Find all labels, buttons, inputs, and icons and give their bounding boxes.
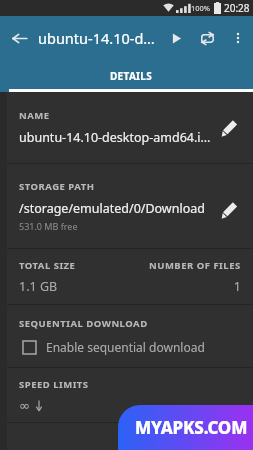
button[interactable]: NAME bbox=[7, 92, 253, 163]
staticText: DETAILS bbox=[110, 69, 152, 83]
staticText: 1 bbox=[233, 278, 241, 295]
staticText: TOTAL SIZE bbox=[19, 259, 76, 272]
staticText: 1.1 GB bbox=[19, 278, 58, 295]
staticText: ∞ bbox=[19, 398, 30, 413]
button[interactable]: More options bbox=[223, 23, 253, 53]
button[interactable]: Back bbox=[0, 19, 38, 57]
staticText: SPEED LIMITS bbox=[19, 378, 89, 391]
staticText: MYAPKS.COM bbox=[135, 416, 248, 439]
button[interactable]: Edit storage path bbox=[213, 194, 245, 226]
staticText: NUMBER OF FILES bbox=[149, 259, 241, 272]
staticText: ubuntu-14.10-d… bbox=[38, 28, 161, 48]
button[interactable]: Start bbox=[161, 23, 191, 53]
button[interactable]: STORAGE PATH bbox=[7, 164, 253, 248]
button[interactable]: Edit name bbox=[213, 112, 245, 144]
staticText: ubuntu-14.10-desktop-amd64.iso bbox=[19, 129, 213, 146]
button[interactable]: TOTAL SIZE bbox=[7, 249, 253, 304]
button[interactable]: Enable sequential download bbox=[19, 339, 241, 355]
staticText: SEQUENTIAL DOWNLOAD bbox=[19, 317, 148, 330]
staticText: 531.0 MB free bbox=[19, 220, 78, 232]
staticText: Enable sequential download bbox=[46, 339, 205, 355]
staticText: 20:28 bbox=[224, 1, 250, 15]
staticText: NAME bbox=[19, 109, 50, 122]
staticText: STORAGE PATH bbox=[19, 180, 95, 193]
staticText: 100% bbox=[191, 3, 211, 13]
staticText: /storage/emulated/0/Download bbox=[19, 200, 205, 217]
button[interactable]: Sequential loop bbox=[191, 22, 223, 54]
button[interactable]: DETAILS bbox=[9, 59, 253, 92]
button[interactable]: SPEED LIMITS bbox=[7, 368, 253, 422]
